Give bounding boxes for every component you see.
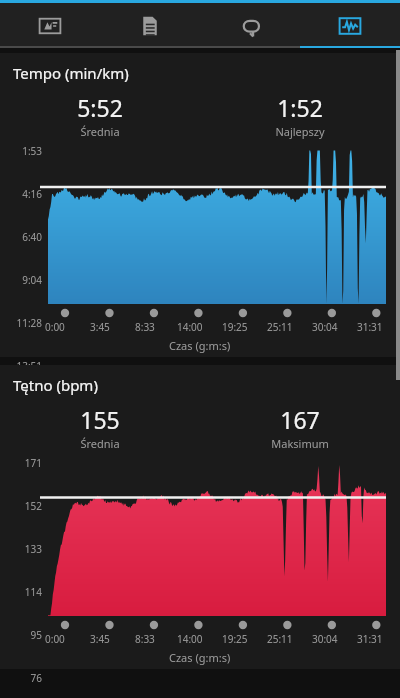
staticText: 3:45 [90, 320, 110, 334]
staticText: Tętno (bpm) [13, 375, 98, 395]
staticText: 19:25 [222, 632, 248, 646]
button[interactable]: Charts [300, 3, 400, 48]
button[interactable]: Tętno (bpm) [0, 365, 400, 669]
staticText: 25:11 [267, 320, 293, 334]
staticText: 1:52 [277, 92, 323, 123]
staticText: 8:33 [135, 320, 155, 334]
staticText: 3:45 [90, 632, 110, 646]
staticText: 0:00 [45, 632, 65, 646]
staticText: 14:00 [177, 632, 203, 646]
staticText: 0:00 [45, 320, 65, 334]
staticText: 8:33 [135, 632, 155, 646]
staticText: 152 [0, 499, 42, 513]
staticText: 9:04 [0, 273, 42, 287]
staticText: 30:04 [312, 320, 338, 334]
staticText: 95 [0, 628, 42, 642]
staticText: 1:53 [0, 144, 42, 158]
button[interactable]: Tempo (min/km) [0, 53, 400, 357]
staticText: Czas (g:m:s) [169, 650, 231, 665]
staticText: Tempo (min/km) [13, 63, 129, 83]
staticText: 11:28 [0, 316, 42, 330]
button[interactable]: Map [0, 3, 100, 48]
staticText: 4:16 [0, 187, 42, 201]
staticText: Średnia [80, 124, 120, 139]
staticText: 155 [80, 404, 120, 435]
staticText: 14:00 [177, 320, 203, 334]
staticText: 13:51 [0, 359, 42, 373]
staticText: Maksimum [271, 436, 329, 451]
staticText: 5:52 [77, 92, 123, 123]
staticText: 76 [0, 671, 42, 685]
staticText: 167 [280, 404, 320, 435]
button[interactable]: Details [100, 3, 200, 48]
staticText: Czas (g:m:s) [169, 338, 231, 353]
staticText: Najlepszy [275, 124, 325, 139]
staticText: 114 [0, 585, 42, 599]
staticText: 31:31 [357, 320, 383, 334]
button[interactable]: Laps [200, 3, 300, 48]
staticText: 6:40 [0, 230, 42, 244]
staticText: 171 [0, 456, 42, 470]
staticText: 25:11 [267, 632, 293, 646]
staticText: 133 [0, 542, 42, 556]
staticText: Średnia [80, 436, 120, 451]
staticText: 19:25 [222, 320, 248, 334]
staticText: 31:31 [357, 632, 383, 646]
staticText: 30:04 [312, 632, 338, 646]
